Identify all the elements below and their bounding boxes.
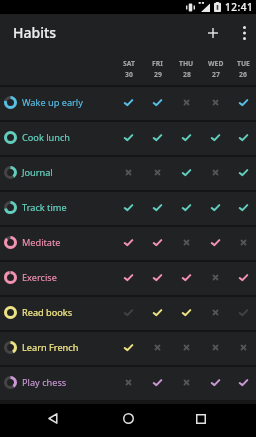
staticText: 27 [212,70,220,79]
staticText: Journal [22,166,53,179]
button[interactable] [230,365,256,400]
button[interactable] [230,260,256,295]
button[interactable] [201,225,230,260]
button[interactable] [172,225,201,260]
button[interactable] [186,404,215,433]
button[interactable] [114,330,143,365]
button[interactable]: Play chess [0,365,256,400]
staticText: TUE [237,59,250,68]
button[interactable]: Wake up early [0,85,256,120]
button[interactable] [201,365,230,400]
button[interactable] [114,120,143,155]
button[interactable] [114,260,143,295]
button[interactable] [172,330,201,365]
button[interactable] [143,260,172,295]
staticText: Exercise [22,271,57,284]
button[interactable] [114,404,143,433]
button[interactable] [38,404,67,433]
button[interactable]: Learn French [0,330,256,365]
button[interactable]: Meditate [0,225,256,260]
button[interactable] [172,120,201,155]
button[interactable] [114,295,143,330]
button[interactable] [114,85,143,120]
button[interactable]: Exercise [0,260,256,295]
button[interactable] [230,330,256,365]
button[interactable] [230,225,256,260]
button[interactable] [143,85,172,120]
staticText: THU [179,59,194,68]
staticText: 26 [239,70,247,79]
button[interactable]: Read books [0,295,256,330]
staticText: Habits [13,23,57,42]
button[interactable] [114,190,143,225]
button[interactable] [172,365,201,400]
button[interactable] [201,260,230,295]
button[interactable]: Track time [0,190,256,225]
button[interactable] [230,120,256,155]
button[interactable] [172,295,201,330]
button[interactable] [114,225,143,260]
button[interactable] [230,85,256,120]
button[interactable] [230,295,256,330]
staticText: 30 [125,70,133,79]
button[interactable] [172,155,201,190]
button[interactable] [201,190,230,225]
staticText: Play chess [22,376,67,389]
staticText: Learn French [22,341,79,354]
button[interactable] [143,155,172,190]
button[interactable] [230,155,256,190]
button[interactable] [233,14,256,52]
staticText: WED [208,59,224,68]
button[interactable] [201,295,230,330]
button[interactable]: Cook lunch [0,120,256,155]
button[interactable] [143,120,172,155]
button[interactable] [172,85,201,120]
button[interactable] [114,155,143,190]
button[interactable] [172,260,201,295]
button[interactable] [143,225,172,260]
button[interactable] [201,120,230,155]
button[interactable] [143,295,172,330]
staticText: Read books [22,306,73,319]
button[interactable]: Journal [0,155,256,190]
button[interactable] [172,190,201,225]
staticText: Wake up early [22,96,83,109]
button[interactable] [143,190,172,225]
button[interactable] [143,330,172,365]
staticText: Cook lunch [22,131,71,144]
button[interactable] [201,330,230,365]
button[interactable] [143,365,172,400]
staticText: Meditate [22,236,61,249]
staticText: 29 [154,70,162,79]
button[interactable] [114,365,143,400]
staticText: 12:41 [225,0,254,14]
button[interactable] [230,190,256,225]
staticText: FRI [152,59,163,68]
button[interactable] [201,155,230,190]
staticText: SAT [123,59,135,68]
staticText: 28 [183,70,191,79]
button[interactable] [193,14,233,52]
staticText: Track time [22,201,67,214]
button[interactable] [201,85,230,120]
